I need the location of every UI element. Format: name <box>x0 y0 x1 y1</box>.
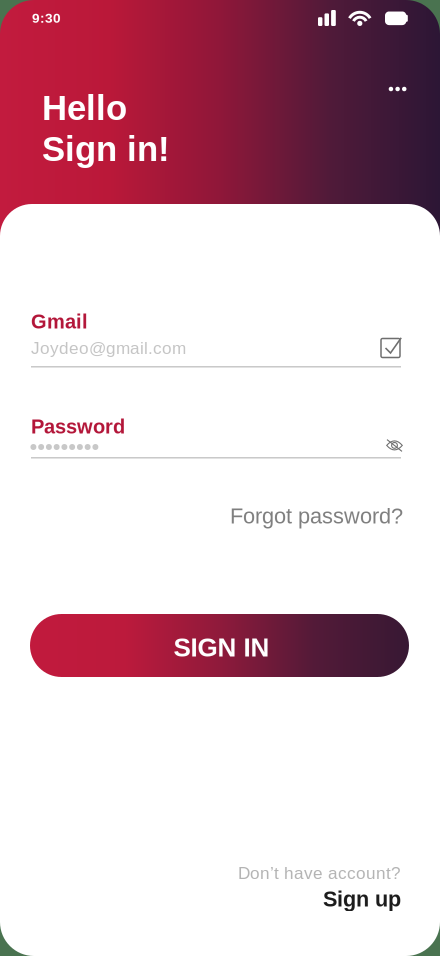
staticText: Password <box>31 415 125 438</box>
button[interactable]: Sign up <box>323 887 401 911</box>
staticText: Hello <box>42 89 127 127</box>
staticText: 9:30 <box>32 10 61 26</box>
button[interactable]: Forgot password? <box>230 504 403 528</box>
button[interactable]: SIGN IN <box>30 614 409 677</box>
staticText: Forgot password? <box>230 504 403 528</box>
staticText: Sign in! <box>42 130 170 168</box>
staticText: Sign up <box>323 887 401 911</box>
button[interactable]: More options <box>375 72 421 106</box>
staticText: Gmail <box>31 310 88 333</box>
staticText: SIGN IN <box>173 633 269 662</box>
button[interactable]: Email verified <box>381 337 402 358</box>
staticText: Joydeo@gmail.com <box>31 338 186 357</box>
staticText: Don’t have account? <box>238 863 401 882</box>
button[interactable]: Show password <box>386 439 403 452</box>
